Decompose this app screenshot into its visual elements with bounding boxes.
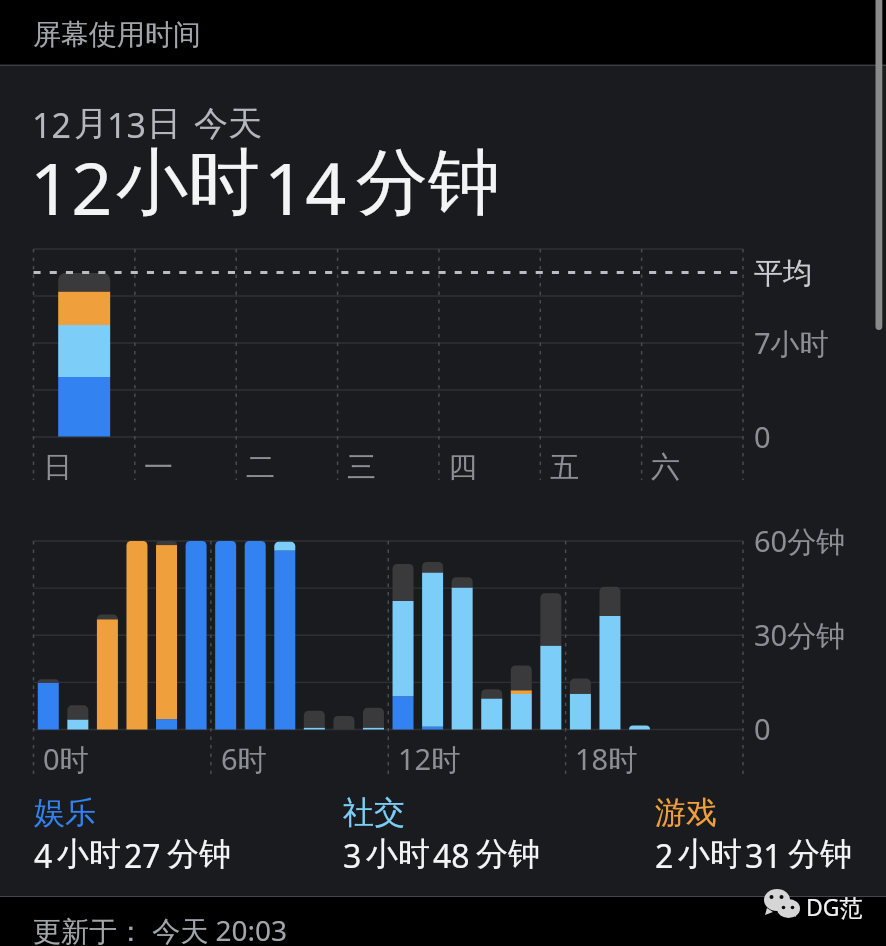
button[interactable]: 娱乐 bbox=[34, 793, 334, 875]
staticText: 游戏 bbox=[655, 793, 717, 832]
staticText: 分钟 bbox=[788, 834, 852, 874]
staticText: 27 bbox=[124, 834, 161, 878]
staticText: 更新于： 今天 20:03 bbox=[33, 911, 288, 946]
staticText: 60分钟 bbox=[754, 521, 846, 561]
staticText: 12 bbox=[30, 138, 113, 236]
staticText: 三 bbox=[347, 449, 376, 486]
staticText: 0 bbox=[754, 417, 771, 456]
staticText: 31 bbox=[745, 834, 782, 878]
staticText: 小时 bbox=[366, 834, 430, 874]
staticText: 12 bbox=[32, 102, 71, 148]
staticText: 小时 bbox=[57, 834, 121, 874]
staticText: 3 bbox=[343, 834, 362, 878]
staticText: 分钟 bbox=[476, 834, 540, 874]
staticText: 18时 bbox=[575, 739, 638, 779]
staticText: 12时 bbox=[398, 739, 461, 779]
staticText: 六 bbox=[651, 449, 680, 486]
staticText: 48 bbox=[433, 834, 470, 878]
staticText: 分钟 bbox=[356, 138, 500, 229]
staticText: 屏幕使用时间 bbox=[33, 17, 201, 52]
staticText: 2 bbox=[655, 834, 674, 878]
button[interactable]: 游戏 bbox=[655, 793, 886, 875]
staticText: 13 bbox=[107, 102, 146, 148]
staticText: 日 bbox=[43, 449, 72, 486]
staticText: 今天 bbox=[194, 102, 262, 145]
button[interactable]: 社交 bbox=[343, 793, 643, 875]
button[interactable]: 更新于： 今天 20:03 bbox=[0, 897, 886, 946]
staticText: 四 bbox=[448, 449, 477, 486]
staticText: DG范 bbox=[806, 891, 863, 922]
staticText: 二 bbox=[246, 449, 275, 486]
staticText: 月 bbox=[74, 102, 108, 145]
staticText: 30分钟 bbox=[754, 615, 846, 655]
staticText: 五 bbox=[550, 449, 579, 486]
staticText: 4 bbox=[34, 834, 53, 878]
button[interactable]: 屏幕使用时间 bbox=[0, 0, 886, 64]
staticText: 一 bbox=[144, 449, 173, 486]
staticText: 分钟 bbox=[167, 834, 231, 874]
staticText: 0 bbox=[754, 709, 771, 748]
staticText: 小时 bbox=[678, 834, 742, 874]
staticText: 小时 bbox=[116, 138, 260, 229]
staticText: 14 bbox=[264, 138, 347, 236]
staticText: 平均 bbox=[754, 255, 812, 292]
staticText: 日 bbox=[147, 102, 181, 145]
staticText: 娱乐 bbox=[34, 793, 96, 832]
staticText: 0时 bbox=[43, 739, 89, 779]
staticText: 社交 bbox=[343, 793, 405, 832]
staticText: 6时 bbox=[221, 739, 267, 779]
staticText: 7小时 bbox=[754, 323, 829, 363]
other: WeChat watermark DG fan bbox=[760, 886, 886, 926]
